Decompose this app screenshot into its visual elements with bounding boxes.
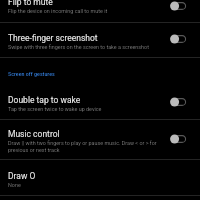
- staticText: Double tap to wake: [8, 95, 81, 105]
- staticText: Draw || with two fingers to play or paus…: [8, 140, 159, 153]
- button[interactable]: Toggle setting: [170, 0, 188, 14]
- button[interactable]: Toggle setting: [170, 131, 188, 147]
- staticText: Flip the device on incoming call to mute…: [8, 8, 108, 14]
- button[interactable]: Flip to mute: [0, 0, 200, 10]
- staticText: Three-finger screenshot: [8, 33, 98, 43]
- button[interactable]: Toggle setting: [170, 94, 188, 110]
- staticText: Music control: [8, 129, 60, 139]
- staticText: Tap the screen twice to wake up device: [8, 106, 102, 112]
- button[interactable]: Music control: [0, 120, 200, 159]
- staticText: Flip to mute: [8, 0, 53, 7]
- staticText: Swipe with three fingers on the screen t…: [8, 44, 149, 50]
- button[interactable]: Draw O: [0, 160, 200, 195]
- button[interactable]: Toggle setting: [170, 31, 188, 47]
- staticText: Screen off gestures: [8, 70, 55, 77]
- button[interactable]: Double tap to wake: [0, 88, 200, 119]
- staticText: None: [8, 182, 21, 188]
- button[interactable]: Three-finger screenshot: [0, 23, 200, 57]
- staticText: Draw O: [8, 171, 36, 181]
